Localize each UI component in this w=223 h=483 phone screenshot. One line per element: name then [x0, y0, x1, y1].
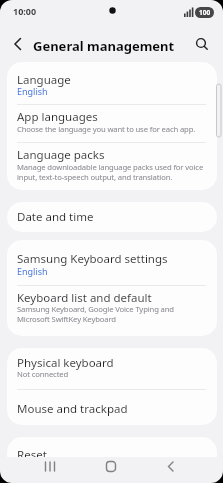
- staticText: 100: [199, 8, 211, 17]
- staticText: English: [17, 85, 48, 97]
- staticText: Choose the language you want to use for …: [17, 124, 196, 134]
- staticText: Keyboard list and default: [17, 290, 152, 306]
- staticText: General management: [33, 37, 175, 55]
- button[interactable]: [7, 348, 217, 389]
- staticText: Not connected: [17, 369, 69, 379]
- staticText: Language packs: [17, 147, 105, 163]
- button[interactable]: [38, 456, 62, 478]
- button[interactable]: [7, 437, 217, 467]
- staticText: Language: [17, 72, 71, 88]
- button[interactable]: [7, 143, 217, 190]
- staticText: Mouse and trackpad: [17, 401, 128, 417]
- button[interactable]: [7, 202, 217, 232]
- staticText: Physical keyboard: [17, 355, 114, 371]
- staticText: Manage downloadable language packs used …: [17, 162, 204, 172]
- button[interactable]: [99, 456, 123, 478]
- button[interactable]: [159, 456, 183, 478]
- staticText: input, text-to-speech output, and transl…: [17, 172, 173, 182]
- staticText: Date and time: [17, 209, 94, 225]
- button[interactable]: [7, 286, 217, 336]
- staticText: English: [17, 265, 48, 277]
- button[interactable]: [7, 105, 217, 142]
- staticText: Samsung Keyboard settings: [17, 251, 168, 267]
- staticText: Reset: [17, 447, 47, 457]
- button[interactable]: [8, 33, 30, 55]
- staticText: Microsoft SwiftKey Keyboard: [17, 314, 116, 324]
- button[interactable]: [191, 33, 213, 55]
- staticText: Samsung Keyboard, Google Voice Typing an…: [17, 304, 174, 314]
- button[interactable]: [7, 390, 217, 425]
- staticText: 10:00: [13, 5, 37, 17]
- button[interactable]: [7, 240, 217, 285]
- button[interactable]: [7, 62, 217, 104]
- staticText: App languages: [17, 109, 98, 125]
